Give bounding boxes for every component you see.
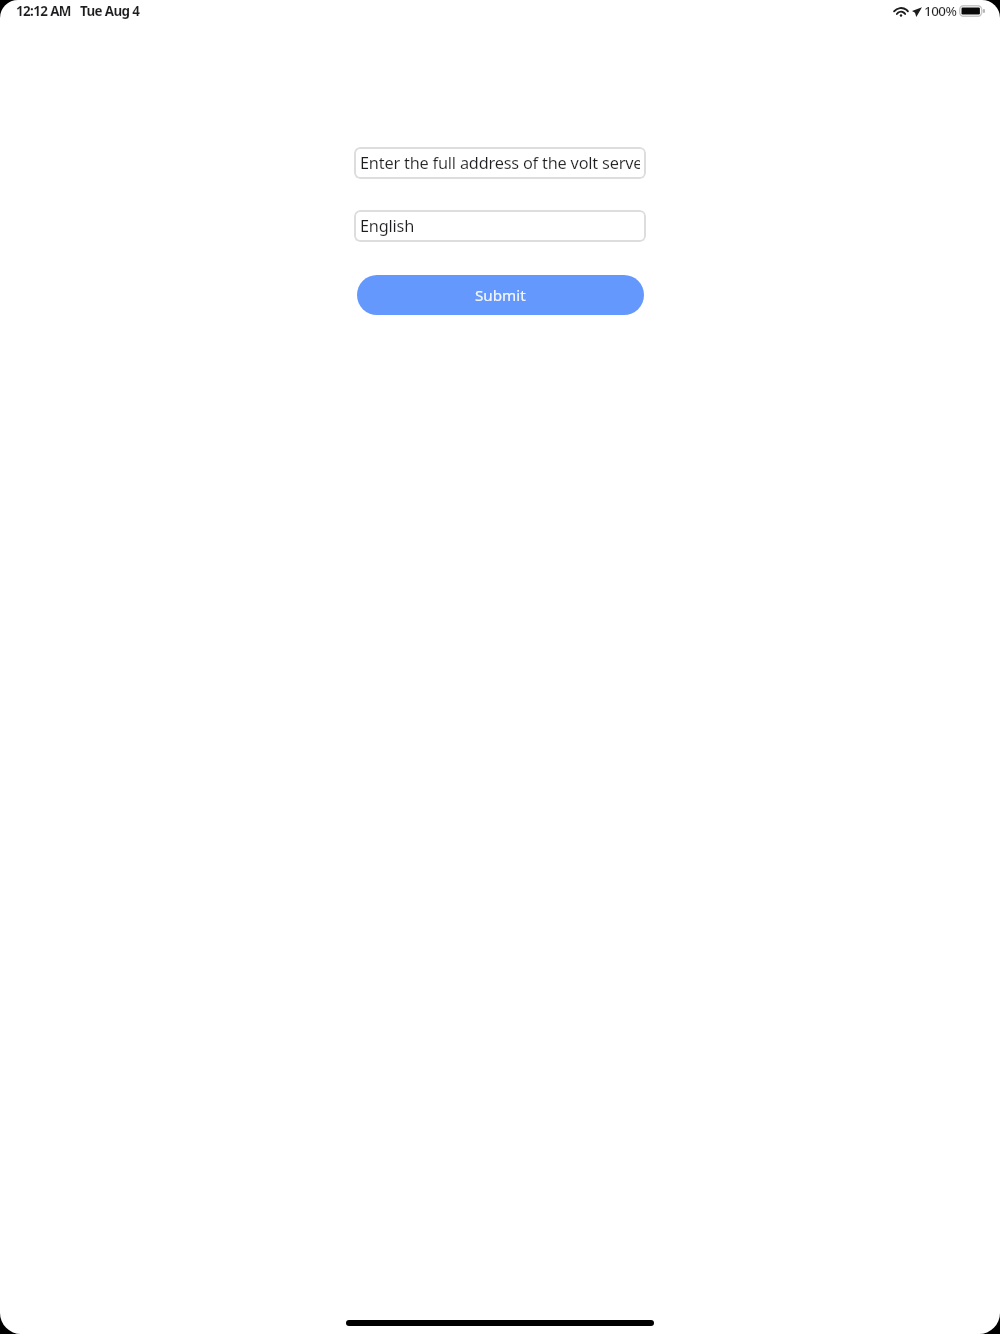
button[interactable]: English bbox=[354, 210, 646, 242]
staticText: 100% bbox=[924, 2, 957, 20]
button[interactable]: Submit bbox=[357, 275, 644, 315]
button[interactable]: Enter the full address of the volt serve… bbox=[354, 147, 646, 179]
other: Battery 100 percent bbox=[959, 5, 985, 17]
staticText: Tue Aug 4 bbox=[80, 2, 140, 20]
other: Wi-Fi bbox=[894, 6, 908, 17]
staticText: Enter the full address of the volt serve… bbox=[360, 152, 640, 174]
other: Location bbox=[912, 6, 922, 17]
staticText: 12:12 AM bbox=[16, 2, 71, 20]
staticText: Submit bbox=[475, 285, 526, 306]
staticText: English bbox=[360, 215, 415, 237]
